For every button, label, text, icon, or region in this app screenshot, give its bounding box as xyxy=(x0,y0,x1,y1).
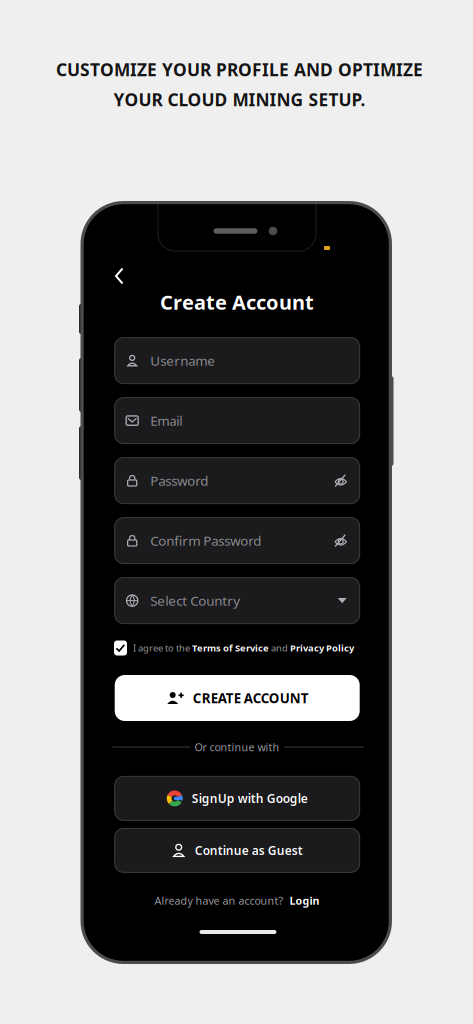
staticText: YOUR CLOUD MINING SETUP. xyxy=(113,88,365,111)
button[interactable]: I agree to the xyxy=(114,639,354,657)
button[interactable]: SignUp with Google xyxy=(115,776,360,820)
button[interactable]: Back xyxy=(108,260,131,291)
staticText: Password xyxy=(150,472,208,489)
staticText: Confirm Password xyxy=(150,532,261,549)
staticText: SignUp with Google xyxy=(192,790,308,806)
button[interactable]: CREATE ACCOUNT xyxy=(115,675,360,721)
staticText: Login xyxy=(289,893,319,908)
staticText: I agree to the xyxy=(133,642,192,654)
staticText: Continue as Guest xyxy=(195,842,303,858)
button[interactable]: Email xyxy=(115,398,360,444)
staticText: CUSTOMIZE YOUR PROFILE AND OPTIMIZE xyxy=(56,58,423,81)
staticText: and xyxy=(269,642,290,654)
staticText: Already have an account? xyxy=(154,893,283,908)
button[interactable]: Select Country xyxy=(115,578,360,624)
staticText: Or continue with xyxy=(194,740,279,754)
button[interactable]: Username xyxy=(115,338,360,384)
staticText: Create Account xyxy=(160,289,314,315)
staticText: CREATE ACCOUNT xyxy=(193,689,309,707)
button[interactable]: Password xyxy=(115,458,360,504)
staticText: Username xyxy=(150,352,215,369)
staticText: Terms of Service xyxy=(192,642,269,654)
staticText: Email xyxy=(150,412,182,429)
staticText: Privacy Policy xyxy=(290,642,354,654)
button[interactable]: Already have an account? xyxy=(154,891,319,909)
button[interactable]: Confirm Password xyxy=(115,518,360,564)
staticText: Select Country xyxy=(150,592,240,609)
button[interactable]: Continue as Guest xyxy=(115,828,360,872)
